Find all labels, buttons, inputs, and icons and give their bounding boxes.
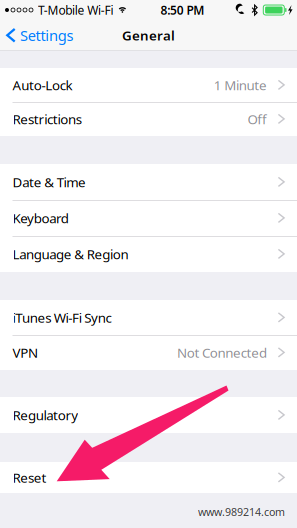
button[interactable]: VPN	[0, 335, 297, 370]
staticText: Keyboard	[12, 209, 69, 227]
button[interactable]: Auto-Lock	[0, 68, 297, 102]
staticText: iTunes Wi-Fi Sync	[12, 309, 111, 326]
button[interactable]: Restrictions	[0, 102, 297, 136]
staticText: Settings	[20, 25, 74, 45]
staticText: T-Mobile Wi-Fi	[38, 2, 113, 18]
staticText: General	[122, 26, 175, 44]
staticText: Reset	[12, 469, 46, 486]
button[interactable]: Date & Time	[0, 164, 297, 200]
staticText: Language & Region	[12, 245, 128, 263]
button[interactable]: Settings	[0, 19, 74, 51]
staticText: Date & Time	[12, 173, 86, 191]
staticText: VPN	[12, 344, 38, 361]
staticText: Auto-Lock	[12, 76, 72, 94]
staticText: 1 Minute	[214, 76, 267, 94]
button[interactable]: Reset	[0, 462, 297, 493]
staticText: Off	[247, 110, 267, 128]
button[interactable]: Keyboard	[0, 200, 297, 236]
staticText: Regulatory	[12, 406, 78, 424]
button[interactable]: Regulatory	[0, 397, 297, 433]
button[interactable]: Language & Region	[0, 236, 297, 272]
staticText: Not Connected	[177, 344, 267, 361]
staticText: Restrictions	[12, 110, 82, 128]
button[interactable]: iTunes Wi-Fi Sync	[0, 300, 297, 335]
staticText: 8:50 PM	[160, 2, 204, 18]
staticText: www.989214.com	[198, 505, 285, 519]
